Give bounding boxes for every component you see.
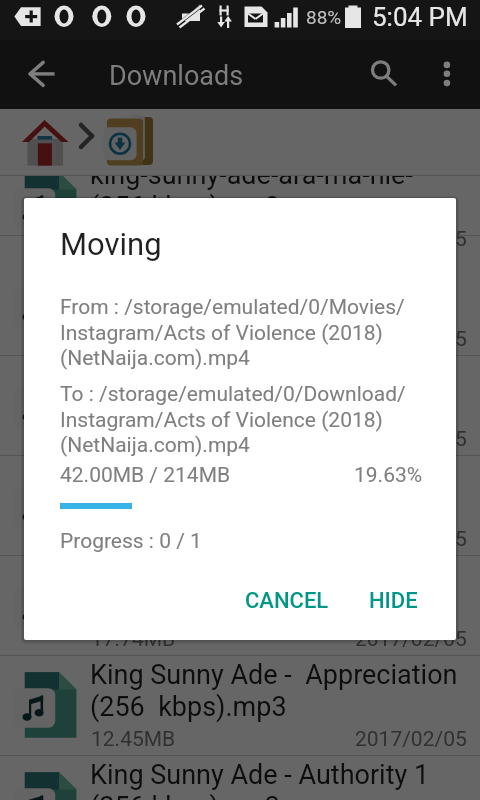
- button[interactable]: More options: [421, 44, 473, 96]
- staticText: CANCEL: [245, 588, 329, 614]
- staticText: king-sunny-ade-ara-ma-nie- (256 kbps).mp…: [90, 176, 480, 222]
- staticText: 2017/02/05: [355, 527, 467, 552]
- staticText: From : /storage/emulated/0/Movies/Instag…: [60, 295, 432, 370]
- staticText: Moving: [60, 226, 162, 262]
- button[interactable]: King Sunny Ade - Appreciation (256 kbps)…: [0, 456, 480, 556]
- button[interactable]: King Sunny Ade - Authority 1 (256 kbps).…: [0, 556, 480, 656]
- staticText: 5:04 PM: [372, 2, 468, 32]
- button[interactable]: King Sunny Ade - Authority 1 (256 kbps).…: [0, 356, 480, 456]
- staticText: King Sunny Ade - Authority 1 (256 kbps).…: [90, 359, 480, 422]
- staticText: To : /storage/emulated/0/Download/Instag…: [60, 382, 432, 457]
- button[interactable]: king-sunny-ade-ara-ma-nie- (256 kbps).mp…: [0, 176, 480, 236]
- button[interactable]: HIDE: [356, 578, 431, 624]
- staticText: 2017/02/05: [355, 727, 467, 752]
- staticText: King Sunny Ade - Appreciation (256 kbps)…: [90, 259, 480, 322]
- staticText: 9.45MB: [91, 227, 164, 252]
- button[interactable]: Search: [355, 44, 407, 96]
- staticText: 88%: [306, 6, 342, 28]
- staticText: 17.74MB: [91, 627, 176, 652]
- staticText: HIDE: [369, 588, 418, 614]
- staticText: 15.32MB: [91, 327, 176, 352]
- button[interactable]: King Sunny Ade - Appreciation (256 kbps)…: [0, 656, 480, 756]
- staticText: Downloads: [109, 60, 244, 92]
- staticText: Progress : 0 / 1: [60, 529, 202, 554]
- staticText: King Sunny Ade - Appreciation (256 kbps)…: [90, 459, 480, 522]
- staticText: 8.21MB: [91, 427, 164, 452]
- staticText: King Sunny Ade - Authority 1 (256 kbps).…: [90, 559, 480, 622]
- staticText: 11.09MB: [91, 527, 176, 552]
- staticText: King Sunny Ade - Appreciation (256 kbps)…: [90, 659, 480, 722]
- button[interactable]: Back: [4, 48, 56, 100]
- staticText: 19.63%: [354, 463, 423, 488]
- staticText: King Sunny Ade - Authority 1 (256 kbps).…: [90, 759, 480, 800]
- staticText: 2017/02/05: [355, 327, 467, 352]
- button[interactable]: King Sunny Ade - Appreciation (256 kbps)…: [0, 256, 480, 356]
- button[interactable]: King Sunny Ade - Authority 1 (256 kbps).…: [0, 756, 480, 800]
- staticText: 2017/02/05: [355, 427, 467, 452]
- button[interactable]: CANCEL: [232, 578, 342, 624]
- staticText: 2017/02/05: [355, 227, 467, 252]
- staticText: 42.00MB / 214MB: [60, 463, 231, 488]
- staticText: 2017/02/05: [355, 627, 467, 652]
- staticText: 12.45MB: [91, 727, 176, 752]
